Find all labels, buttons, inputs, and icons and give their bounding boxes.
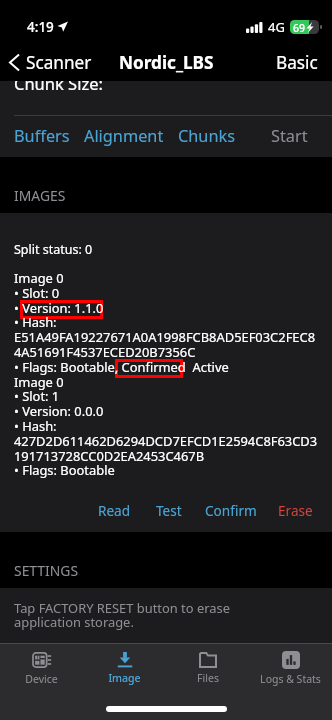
staticText: Start [271, 125, 308, 147]
staticText: Device [25, 672, 58, 686]
button[interactable]: Erase [278, 501, 313, 520]
staticText: • Hash: [14, 417, 57, 435]
staticText: Chunks [178, 125, 236, 147]
staticText: Files [197, 671, 219, 685]
staticText: Scanner [26, 51, 92, 74]
button[interactable]: Scanner [8, 51, 92, 74]
staticText: Chunk Size: [14, 81, 103, 94]
staticText: • Version: 0.0.0 [14, 402, 104, 420]
staticText: 427D2D611462D6294DCD7EFCD1E2594C8F63CD3 [14, 432, 318, 450]
staticText: SETTINGS [14, 561, 79, 580]
staticText: 69 [293, 21, 306, 35]
button[interactable]: Logs & Stats [249, 644, 332, 693]
staticText: Logs & Stats [260, 672, 321, 686]
staticText: • Flags: Bootable, Confirmed Active [14, 358, 229, 376]
staticText: • Slot: 1 [14, 387, 60, 405]
staticText: • Version: 1.1.0 [14, 299, 104, 317]
staticText: Image 0 [14, 373, 64, 391]
button[interactable]: Confirm [205, 501, 257, 520]
staticText: Image [108, 671, 141, 685]
button[interactable]: Alignment [84, 125, 164, 147]
staticText: 4A51691F4537ECED20B7356C [14, 343, 196, 361]
button[interactable]: Chunks [178, 125, 236, 147]
staticText: Confirm [205, 501, 257, 520]
staticText: 4G [268, 18, 285, 36]
staticText: Buffers [14, 125, 70, 147]
staticText: Erase [278, 501, 313, 520]
staticText: Split status: 0 [14, 241, 93, 258]
button[interactable]: Buffers [14, 125, 70, 147]
button[interactable]: Read [98, 501, 131, 520]
staticText: IMAGES [14, 186, 66, 205]
button[interactable]: Files [166, 644, 249, 693]
button[interactable]: Test [156, 501, 182, 520]
staticText: • Hash: [14, 313, 57, 331]
staticText: Basic [276, 51, 318, 74]
staticText: • Flags: Bootable [14, 461, 115, 479]
staticText: Alignment [84, 125, 164, 147]
button[interactable]: Start [271, 125, 308, 147]
staticText: E51A49FA19227671A0A1998FCB8AD5EF03C2FEC8 [14, 328, 316, 346]
button[interactable]: Basic [276, 51, 318, 74]
staticText: 4:19 [27, 18, 54, 36]
button[interactable]: Image [83, 644, 166, 693]
staticText: Read [98, 501, 131, 520]
staticText: Test [156, 501, 182, 520]
button[interactable]: Device [0, 644, 83, 693]
staticText: • Slot: 0 [14, 284, 60, 302]
staticText: Tap FACTORY RESET button to erase applic… [14, 599, 230, 631]
staticText: 191713728CC0D2EA2453C467B [14, 447, 205, 465]
staticText: Image 0 [14, 269, 64, 287]
staticText: Nordic_LBS [119, 51, 214, 74]
